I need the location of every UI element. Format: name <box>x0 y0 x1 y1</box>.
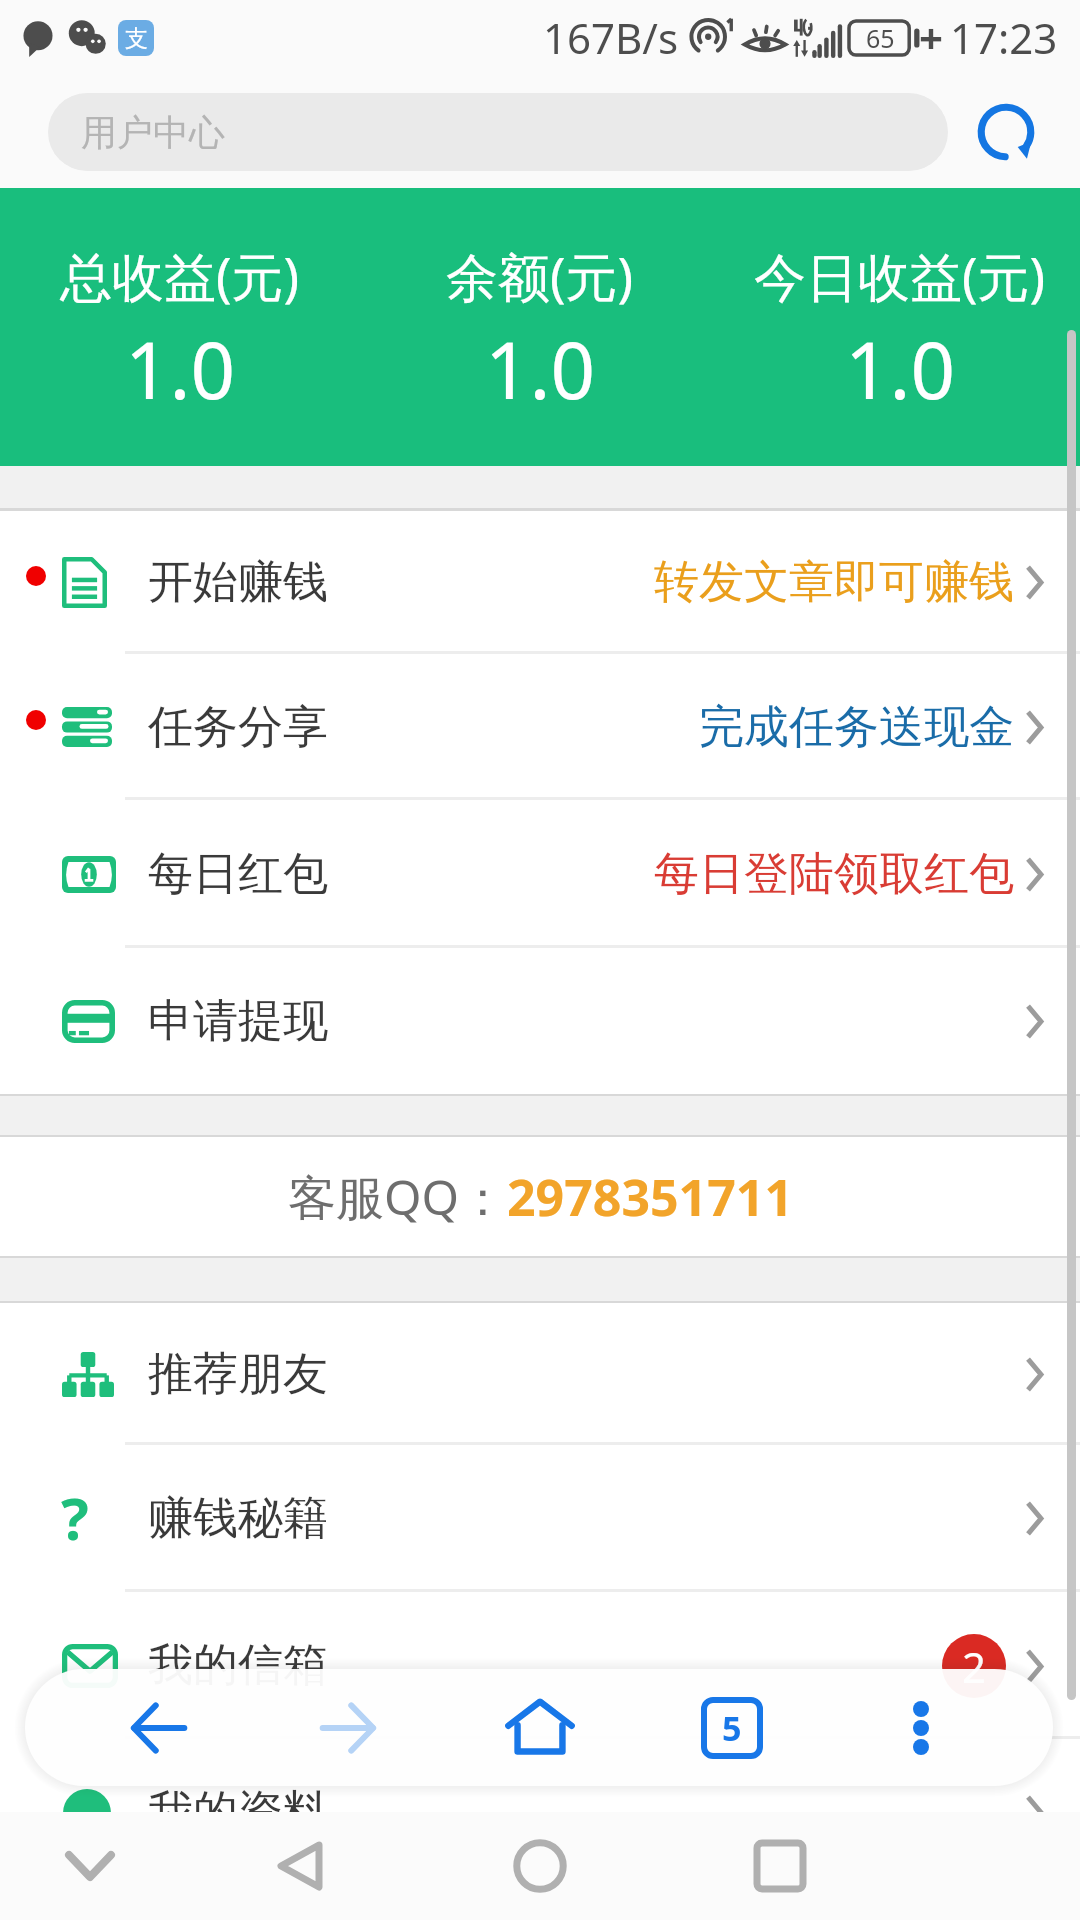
button[interactable]: Recents <box>725 1812 835 1920</box>
button[interactable]: 用户中心 <box>48 93 948 171</box>
staticText: ? <box>61 1478 89 1557</box>
button[interactable]: ? <box>0 1445 1080 1592</box>
staticText: 每日红包 <box>148 846 328 903</box>
staticText: 65 <box>866 21 895 55</box>
staticText: 我的信箱 <box>148 1637 328 1694</box>
button[interactable]: 我的资料 <box>0 1739 1080 1886</box>
button[interactable]: 推荐朋友 <box>0 1303 1080 1445</box>
staticText: 用户中心 <box>81 110 225 155</box>
staticText: 1.0 <box>125 316 236 422</box>
button[interactable]: 任务分享 <box>0 654 1080 800</box>
staticText: 支 <box>125 24 148 53</box>
staticText: 总收益(元) <box>60 240 300 311</box>
staticText: 推荐朋友 <box>148 1346 328 1403</box>
staticText: 任务分享 <box>148 699 328 756</box>
staticText: 余额(元) <box>446 240 634 311</box>
staticText: 2 <box>962 1638 987 1695</box>
staticText: 申请提现 <box>148 993 328 1050</box>
staticText: 完成任务送现金 <box>699 699 1014 756</box>
button[interactable]: Tabs <box>682 1678 782 1778</box>
staticText: 17:23 <box>950 9 1058 66</box>
staticText: 开始赚钱 <box>148 554 328 611</box>
button[interactable]: 开始赚钱 <box>0 511 1080 654</box>
staticText: 2978351711 <box>507 1163 793 1231</box>
button[interactable]: More options <box>871 1678 971 1778</box>
button[interactable]: 今日收益(元) <box>720 188 1080 466</box>
staticText: 赚钱秘籍 <box>148 1490 328 1547</box>
staticText: 5 <box>722 1705 742 1751</box>
button[interactable]: Forward <box>298 1678 398 1778</box>
staticText: 1.0 <box>485 316 596 422</box>
button[interactable]: Hide <box>35 1812 145 1920</box>
button[interactable]: 我的信箱 <box>0 1592 1080 1739</box>
button[interactable]: 总收益(元) <box>0 188 360 466</box>
button[interactable]: Back <box>245 1812 355 1920</box>
button[interactable]: Home <box>490 1678 590 1778</box>
button[interactable]: 客服QQ： <box>0 1137 1080 1256</box>
button[interactable]: Home <box>485 1812 595 1920</box>
staticText: + <box>919 9 944 66</box>
staticText: 每日登陆领取红包 <box>654 846 1014 903</box>
button[interactable]: 申请提现 <box>0 948 1080 1094</box>
button[interactable]: 每日红包 <box>0 800 1080 948</box>
staticText: 167B/s <box>543 9 679 66</box>
staticText: 客服QQ： <box>288 1164 507 1230</box>
staticText: 1.0 <box>845 316 956 422</box>
button[interactable]: Refresh <box>968 94 1044 170</box>
button[interactable]: Back <box>108 1678 208 1778</box>
staticText: 转发文章即可赚钱 <box>654 554 1014 611</box>
button[interactable]: 余额(元) <box>360 188 720 466</box>
staticText: 今日收益(元) <box>754 240 1046 311</box>
staticText: 我的资料 <box>148 1784 328 1841</box>
